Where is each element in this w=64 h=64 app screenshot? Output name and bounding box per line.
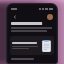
button[interactable]: Back [11, 13, 18, 20]
button[interactable]: Account [47, 14, 53, 20]
button[interactable] [10, 36, 54, 55]
